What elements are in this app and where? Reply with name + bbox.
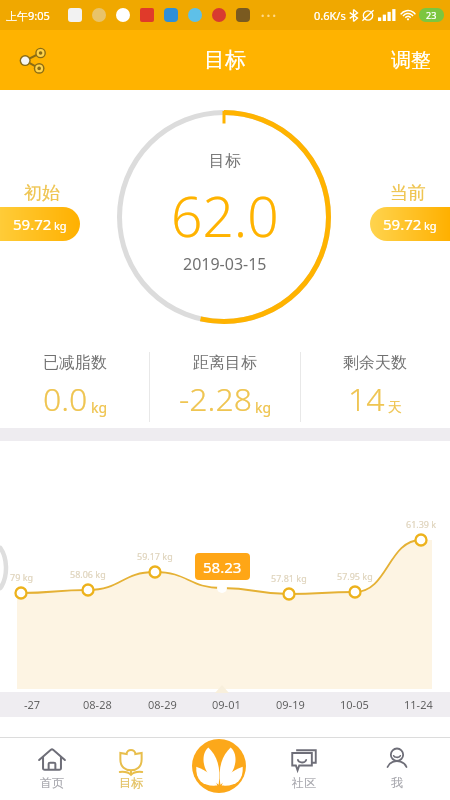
staticText: 2019-03-15 bbox=[183, 253, 267, 275]
button[interactable]: 社区 bbox=[270, 746, 338, 800]
button[interactable]: 已减脂数 bbox=[0, 346, 150, 428]
staticText: 当前 bbox=[390, 182, 426, 205]
button[interactable]: 距离目标 bbox=[150, 346, 300, 428]
staticText: 调整 bbox=[391, 48, 431, 73]
staticText: 57.95 kg bbox=[337, 570, 373, 582]
staticText: 首页 bbox=[40, 775, 64, 790]
staticText: 距离目标 bbox=[193, 353, 257, 373]
staticText: 57.81 kg bbox=[271, 572, 307, 584]
staticText: 61.39 k bbox=[406, 518, 437, 530]
button[interactable]: 我 bbox=[363, 746, 431, 800]
staticText: 天 bbox=[388, 399, 402, 417]
staticText: 已减脂数 bbox=[43, 353, 107, 373]
staticText: 09-01 bbox=[212, 697, 241, 712]
staticText: 0.0 bbox=[43, 377, 88, 421]
staticText: 58.06 kg bbox=[70, 568, 106, 580]
staticText: 59.17 kg bbox=[137, 550, 173, 562]
button[interactable]: 58.23 bbox=[195, 553, 250, 580]
staticText: 我 bbox=[391, 775, 403, 790]
staticText: 10-05 bbox=[340, 697, 369, 712]
staticText: -2.28 bbox=[179, 377, 252, 421]
staticText: 社区 bbox=[292, 775, 316, 790]
staticText: -27 bbox=[24, 697, 41, 712]
staticText: 初始 bbox=[24, 182, 60, 205]
staticText: 剩余天数 bbox=[343, 353, 407, 373]
button[interactable]: Share bbox=[10, 37, 56, 83]
staticText: kg bbox=[255, 398, 272, 417]
staticText: 0.6K/s bbox=[314, 8, 346, 23]
button[interactable]: 59.72 bbox=[370, 207, 450, 241]
staticText: 59.72 bbox=[383, 214, 422, 234]
staticText: 62.0 bbox=[171, 178, 279, 253]
staticText: 目标 bbox=[204, 47, 246, 73]
button[interactable]: 剩余天数 bbox=[300, 346, 450, 428]
button[interactable]: Add record bbox=[192, 739, 246, 793]
staticText: 58.23 bbox=[203, 557, 242, 577]
staticText: 79 kg bbox=[10, 571, 33, 583]
staticText: 09-19 bbox=[276, 697, 305, 712]
button[interactable]: 目标 bbox=[97, 746, 165, 800]
staticText: 59.72 bbox=[13, 214, 52, 234]
staticText: kg bbox=[54, 218, 67, 233]
staticText: 08-28 bbox=[83, 697, 112, 712]
button[interactable]: 首页 bbox=[18, 746, 86, 800]
staticText: 上午9:05 bbox=[6, 8, 50, 23]
staticText: 08-29 bbox=[148, 697, 177, 712]
staticText: kg bbox=[91, 398, 108, 417]
staticText: kg bbox=[424, 218, 437, 233]
staticText: 14 bbox=[348, 377, 385, 421]
button[interactable]: 调整 bbox=[379, 36, 443, 85]
staticText: 目标 bbox=[209, 151, 241, 171]
button[interactable]: 59.72 bbox=[0, 207, 80, 241]
staticText: 23 bbox=[426, 9, 437, 21]
staticText: 11-24 bbox=[404, 697, 433, 712]
staticText: 目标 bbox=[119, 775, 143, 790]
staticText: • • • bbox=[261, 9, 276, 21]
